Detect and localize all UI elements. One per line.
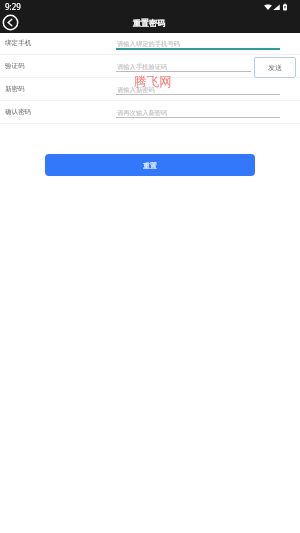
staticText: 新密码 bbox=[5, 85, 25, 93]
staticText: 腾飞网 bbox=[134, 74, 172, 90]
staticText: 请输入绑定的手机号码 bbox=[117, 40, 180, 48]
staticText: 请再次输入新密码 bbox=[117, 109, 168, 117]
staticText: 验证码 bbox=[5, 62, 25, 70]
staticText: 绑定手机 bbox=[5, 39, 32, 47]
staticText: 9:29 bbox=[5, 1, 21, 12]
button[interactable]: 验证码 bbox=[0, 54, 300, 77]
button[interactable]: 确认密码 bbox=[0, 100, 300, 123]
staticText: 发送 bbox=[268, 63, 282, 72]
staticText: 请输入新密码 bbox=[117, 86, 155, 94]
button[interactable]: 绑定手机 bbox=[0, 31, 300, 54]
button[interactable]: 重置 bbox=[45, 154, 255, 176]
staticText: 请输入手机验证码 bbox=[117, 63, 168, 71]
button[interactable]: Back bbox=[2, 14, 19, 31]
staticText: 确认密码 bbox=[5, 108, 32, 116]
staticText: 重置 bbox=[143, 161, 157, 170]
staticText: 重置密码 bbox=[133, 18, 165, 28]
button[interactable]: 发送 bbox=[254, 57, 296, 78]
button[interactable]: 新密码 bbox=[0, 77, 300, 100]
